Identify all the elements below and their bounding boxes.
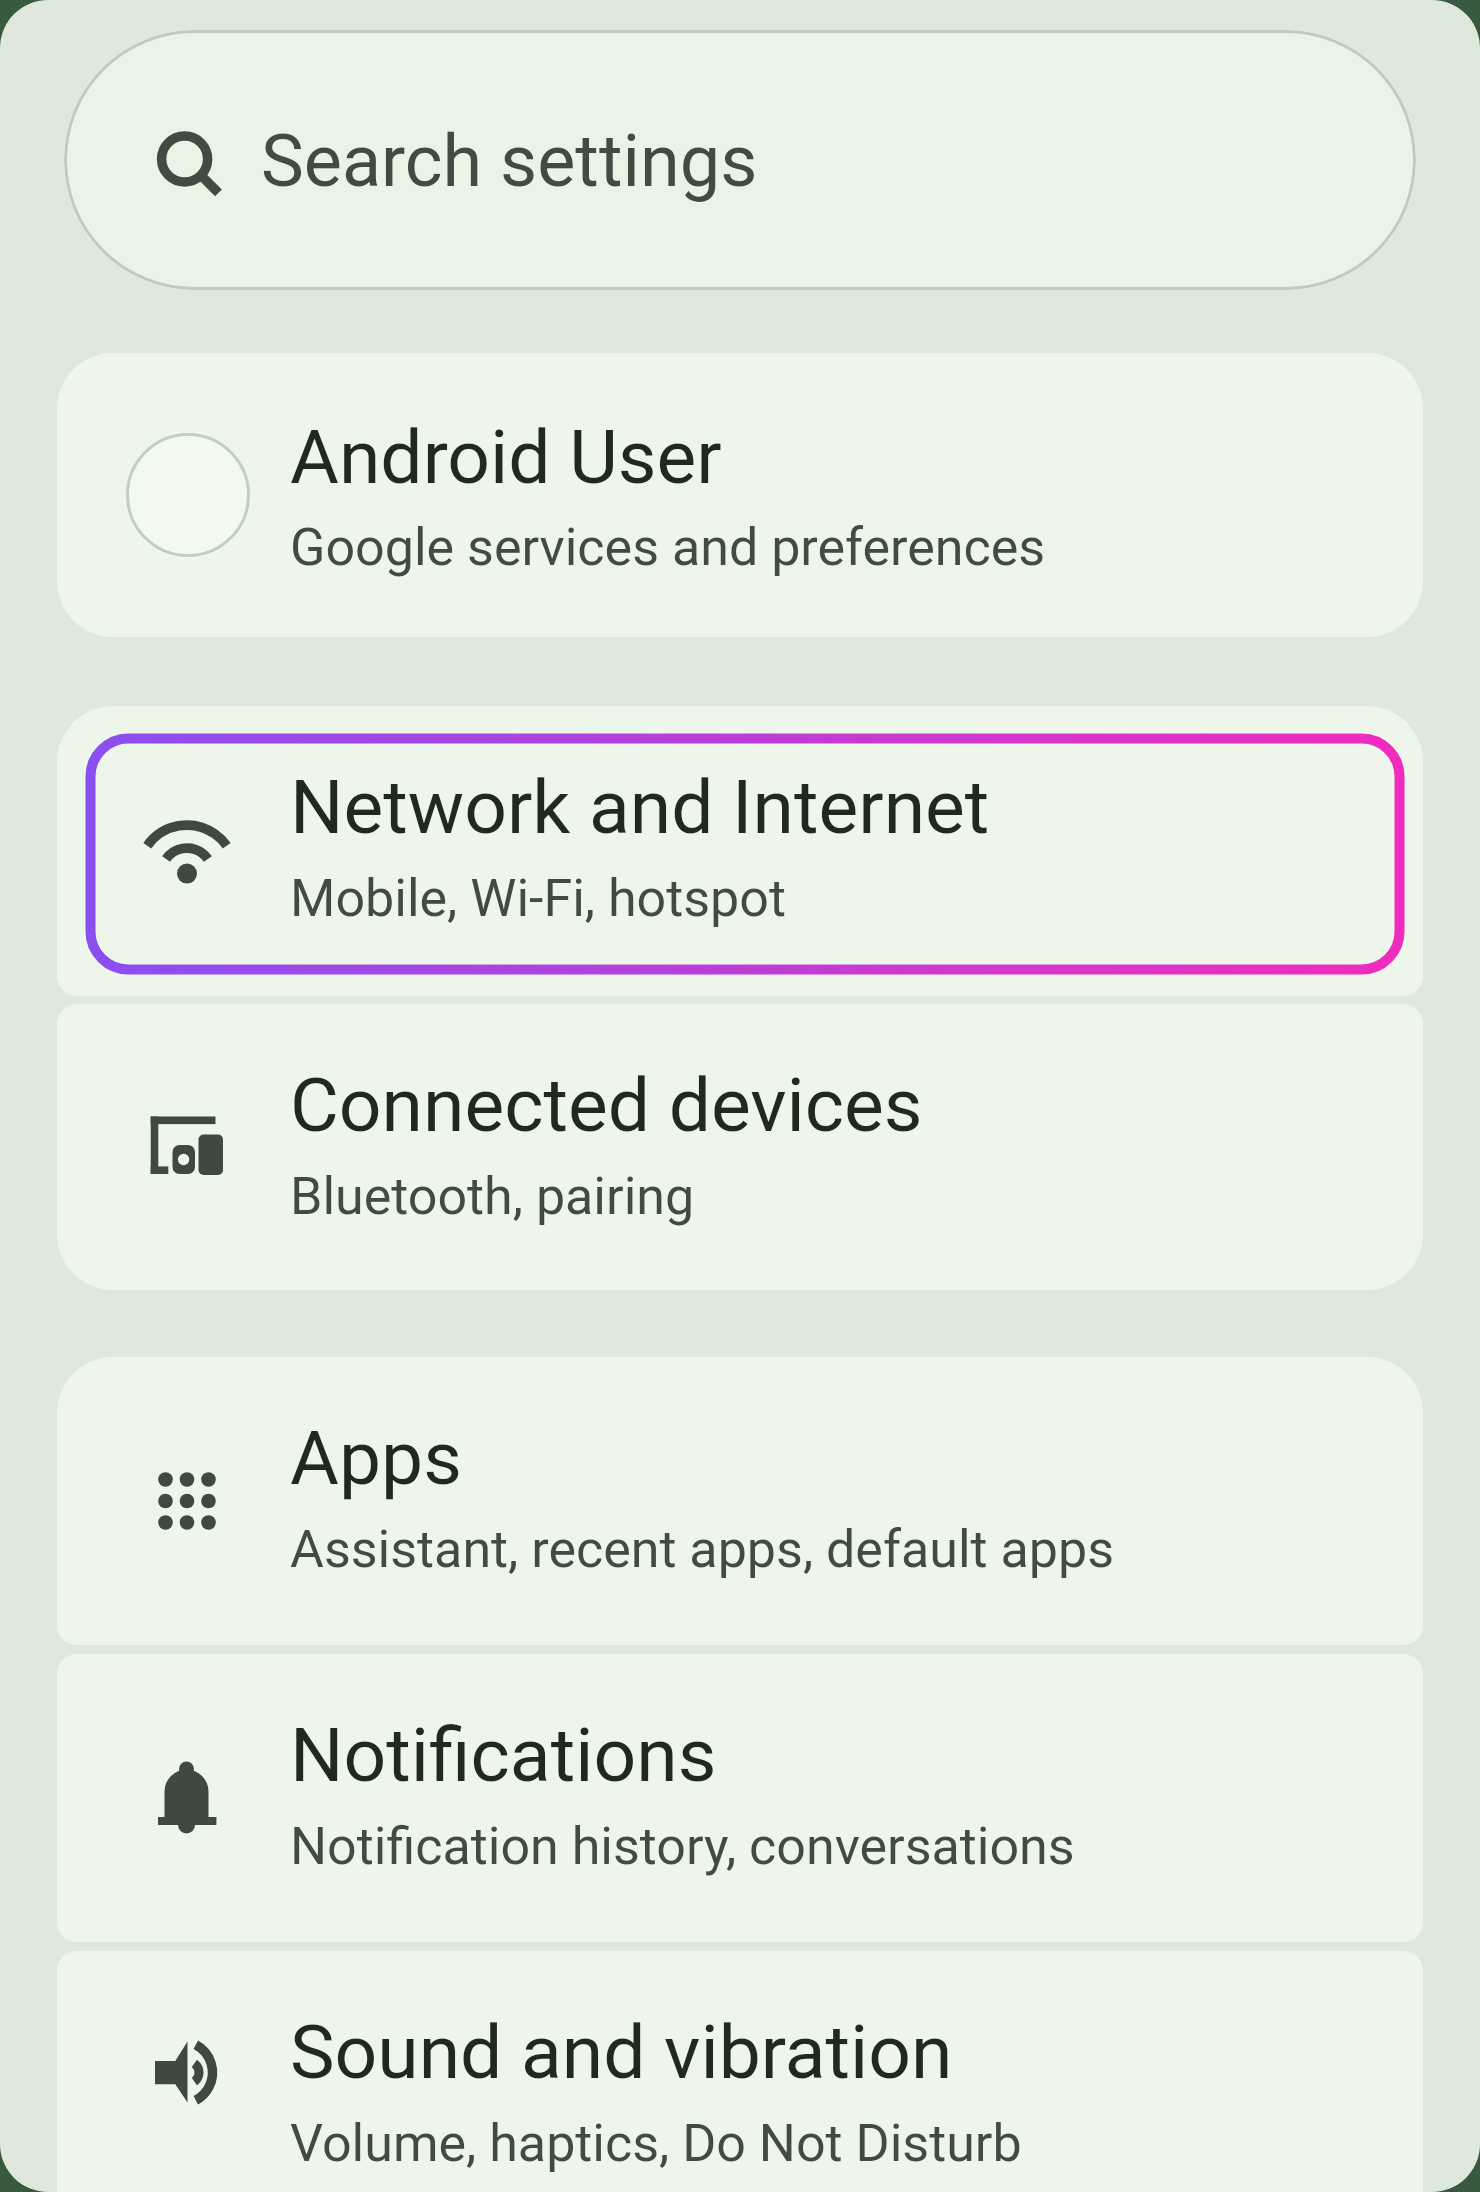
staticText: Apps (290, 1414, 462, 1502)
staticText: Volume, haptics, Do Not Disturb (290, 2113, 1022, 2174)
staticText: Notification history, conversations (290, 1816, 1075, 1877)
button[interactable]: Notifications (57, 1654, 1423, 1942)
staticText: Search settings (261, 119, 758, 203)
staticText: Google services and preferences (290, 517, 1046, 578)
button[interactable]: Search settings (64, 30, 1416, 290)
button[interactable]: Network and Internet (57, 706, 1423, 996)
button[interactable]: Apps (57, 1357, 1423, 1645)
staticText: Notifications (290, 1711, 717, 1799)
staticText: Mobile, Wi-Fi, hotspot (290, 868, 786, 929)
staticText: Bluetooth, pairing (290, 1166, 695, 1227)
staticText: Connected devices (290, 1061, 923, 1149)
button[interactable]: Android User (57, 353, 1423, 637)
staticText: Assistant, recent apps, default apps (290, 1519, 1115, 1580)
staticText: Network and Internet (290, 763, 990, 851)
button[interactable]: Sound and vibration (57, 1951, 1423, 2192)
staticText: Sound and vibration (290, 2008, 953, 2096)
staticText: Android User (290, 413, 722, 501)
button[interactable]: Connected devices (57, 1004, 1423, 1290)
